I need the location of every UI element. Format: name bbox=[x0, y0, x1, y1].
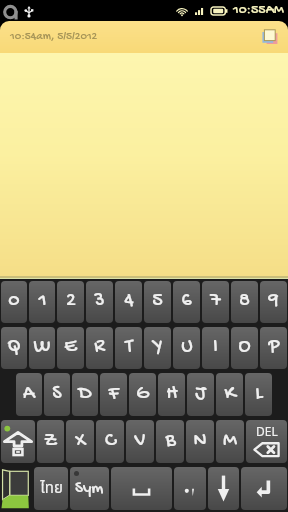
staticText: 2 bbox=[66, 290, 76, 314]
button[interactable]: Q bbox=[1, 327, 27, 369]
button[interactable]: 4 bbox=[115, 281, 142, 323]
button[interactable]: W bbox=[29, 327, 55, 369]
staticText: L bbox=[255, 383, 263, 407]
button[interactable]: C bbox=[96, 420, 124, 463]
staticText: G bbox=[136, 383, 149, 407]
staticText: B bbox=[165, 430, 176, 454]
button[interactable]: J bbox=[187, 373, 214, 416]
button[interactable]: K bbox=[216, 373, 243, 416]
button[interactable]: Shift bbox=[1, 420, 35, 463]
button[interactable]: 7 bbox=[202, 281, 229, 323]
button[interactable]: Down bbox=[208, 467, 239, 510]
button[interactable]: Space bbox=[111, 467, 172, 510]
staticText: U bbox=[181, 336, 193, 360]
staticText: S bbox=[52, 383, 62, 407]
staticText: 3 bbox=[94, 290, 105, 314]
button[interactable]: D bbox=[72, 373, 98, 416]
button[interactable]: T bbox=[115, 327, 142, 369]
staticText: ไทย bbox=[40, 477, 63, 500]
staticText: A bbox=[23, 383, 35, 407]
button[interactable]: All notes bbox=[258, 25, 282, 49]
staticText: W bbox=[33, 336, 51, 360]
staticText: Sym bbox=[75, 479, 104, 499]
button[interactable]: R bbox=[86, 327, 113, 369]
staticText: Y bbox=[153, 336, 163, 360]
staticText: 8 bbox=[239, 290, 250, 314]
button[interactable]: N bbox=[186, 420, 214, 463]
button[interactable]: 1 bbox=[29, 281, 55, 323]
button[interactable]: ไทย bbox=[34, 467, 68, 510]
staticText: 9 bbox=[268, 290, 279, 314]
staticText: T bbox=[125, 336, 133, 360]
staticText: 10:54am, 5/5/2012 bbox=[10, 30, 98, 44]
staticText: J bbox=[195, 383, 206, 407]
staticText: Q bbox=[7, 336, 21, 360]
staticText: Z bbox=[44, 430, 57, 454]
button[interactable]: 6 bbox=[173, 281, 200, 323]
staticText: F bbox=[108, 383, 119, 407]
staticText: X bbox=[75, 430, 86, 454]
staticText: M bbox=[223, 430, 237, 454]
button[interactable]: Enter bbox=[241, 467, 287, 510]
staticText: 5 bbox=[152, 290, 163, 314]
staticText: 4 bbox=[124, 290, 134, 314]
staticText: R bbox=[94, 336, 105, 360]
staticText: E bbox=[64, 336, 77, 360]
button[interactable]: I bbox=[202, 327, 229, 369]
button[interactable]: Z bbox=[37, 420, 64, 463]
button[interactable]: U bbox=[173, 327, 200, 369]
button[interactable]: F bbox=[100, 373, 127, 416]
staticText: O bbox=[238, 336, 251, 360]
staticText: H bbox=[166, 383, 178, 407]
button[interactable]: G bbox=[129, 373, 156, 416]
button[interactable]: 0 bbox=[1, 281, 27, 323]
button[interactable]: 8 bbox=[231, 281, 258, 323]
button[interactable]: Period and comma bbox=[174, 467, 206, 510]
button[interactable]: 5 bbox=[144, 281, 171, 323]
button[interactable]: A bbox=[16, 373, 42, 416]
button[interactable]: L bbox=[245, 373, 272, 416]
button[interactable]: X bbox=[66, 420, 94, 463]
staticText: 7 bbox=[210, 290, 221, 314]
button[interactable]: M bbox=[216, 420, 244, 463]
staticText: DEL bbox=[256, 423, 278, 439]
button[interactable]: 9 bbox=[260, 281, 287, 323]
button[interactable]: 10:54am, 5/5/2012 bbox=[0, 21, 288, 53]
button[interactable]: V bbox=[126, 420, 154, 463]
staticText: C bbox=[105, 430, 116, 454]
staticText: D bbox=[78, 383, 92, 407]
staticText: P bbox=[268, 336, 280, 360]
button[interactable]: E bbox=[57, 327, 84, 369]
staticText: I bbox=[213, 336, 218, 360]
button[interactable]: Close keyboard bbox=[1, 467, 32, 510]
staticText: 0 bbox=[8, 290, 20, 314]
staticText: 10:55AM bbox=[233, 2, 284, 19]
staticText: K bbox=[224, 383, 236, 407]
staticText: 1 bbox=[38, 290, 47, 314]
button[interactable]: Delete bbox=[246, 420, 287, 463]
button[interactable]: Sym bbox=[70, 467, 109, 510]
button[interactable]: B bbox=[156, 420, 184, 463]
button[interactable]: H bbox=[158, 373, 185, 416]
button[interactable]: P bbox=[260, 327, 287, 369]
button[interactable]: S bbox=[44, 373, 70, 416]
staticText: V bbox=[134, 430, 146, 454]
button[interactable]: 3 bbox=[86, 281, 113, 323]
button[interactable]: 2 bbox=[57, 281, 84, 323]
button[interactable]: Y bbox=[144, 327, 171, 369]
button[interactable]: O bbox=[231, 327, 258, 369]
staticText: 6 bbox=[181, 290, 192, 314]
staticText: N bbox=[193, 430, 207, 454]
